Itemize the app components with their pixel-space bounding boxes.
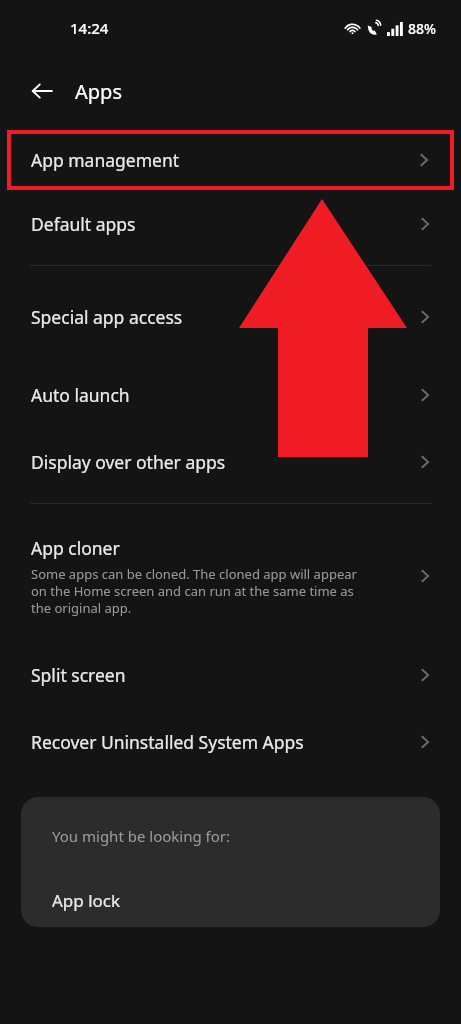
button[interactable]: Default apps — [0, 190, 461, 257]
button[interactable]: App lock — [21, 873, 440, 927]
staticText: 88% — [408, 19, 436, 38]
button[interactable]: Auto launch — [0, 361, 461, 428]
button[interactable]: Special app access — [0, 273, 461, 361]
staticText: You might be looking for: — [52, 826, 231, 846]
staticText: Default apps — [31, 212, 136, 236]
staticText: Recover Uninstalled System Apps — [31, 730, 304, 754]
button[interactable]: Display over other apps — [0, 428, 461, 495]
staticText: App management — [31, 148, 180, 172]
button[interactable]: Recover Uninstalled System Apps — [0, 708, 461, 775]
staticText: Auto launch — [31, 383, 130, 407]
button[interactable]: Back — [22, 71, 62, 111]
staticText: Special app access — [31, 305, 183, 329]
staticText: Display over other apps — [31, 450, 226, 474]
staticText: 14:24 — [70, 18, 109, 38]
button[interactable]: App cloner — [0, 511, 461, 641]
staticText: Some apps can be cloned. The cloned app … — [31, 565, 357, 617]
staticText: Split screen — [31, 663, 126, 687]
staticText: Apps — [75, 78, 122, 105]
staticText: App lock — [52, 889, 121, 912]
button[interactable]: App management — [7, 130, 454, 190]
button[interactable]: Split screen — [0, 641, 461, 708]
staticText: App cloner — [31, 536, 120, 560]
